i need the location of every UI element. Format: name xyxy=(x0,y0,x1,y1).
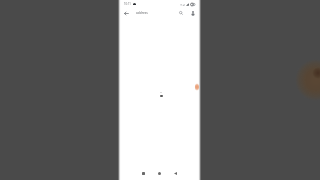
staticText: address xyxy=(136,11,148,15)
button[interactable]: Home xyxy=(155,169,163,177)
button[interactable]: Back xyxy=(171,169,179,177)
button[interactable]: Back xyxy=(122,9,130,17)
button[interactable]: Recent apps xyxy=(139,169,147,177)
button[interactable]: Search xyxy=(177,9,185,17)
staticText: 10:11 xyxy=(124,2,131,6)
button[interactable]: Account xyxy=(189,9,197,17)
other: Scroll indicator xyxy=(195,81,201,93)
